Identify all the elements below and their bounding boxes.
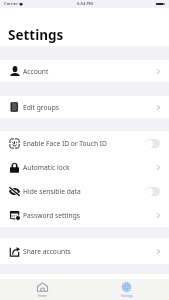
staticText: Home bbox=[38, 294, 47, 298]
button[interactable]: Toggle setting bbox=[145, 187, 160, 196]
staticText: Settings bbox=[121, 294, 133, 298]
staticText: Enable Face ID or Touch ID bbox=[23, 139, 107, 148]
button[interactable]: Settings bbox=[84, 279, 169, 300]
button[interactable]: Toggle setting bbox=[145, 139, 160, 148]
staticText: Automatic lock bbox=[23, 163, 70, 172]
button[interactable]: Password settings bbox=[0, 203, 169, 227]
button[interactable]: Edit groups bbox=[0, 96, 169, 118]
staticText: Password settings bbox=[23, 211, 80, 220]
staticText: Account bbox=[23, 67, 49, 76]
button[interactable]: Account bbox=[0, 60, 169, 82]
staticText: Share accounts bbox=[23, 247, 71, 256]
staticText: Hide sensible data bbox=[23, 187, 81, 196]
button[interactable]: Enable Face ID or Touch ID bbox=[0, 131, 169, 155]
staticText: Edit groups bbox=[23, 103, 59, 112]
button[interactable]: Hide sensible data bbox=[0, 179, 169, 203]
button[interactable]: Home bbox=[0, 279, 84, 300]
button[interactable]: Share accounts bbox=[0, 238, 169, 264]
staticText: Carrier bbox=[4, 1, 18, 7]
staticText: Settings bbox=[8, 26, 64, 44]
button[interactable]: Automatic lock bbox=[0, 155, 169, 179]
staticText: 6:54 PM bbox=[77, 1, 93, 7]
